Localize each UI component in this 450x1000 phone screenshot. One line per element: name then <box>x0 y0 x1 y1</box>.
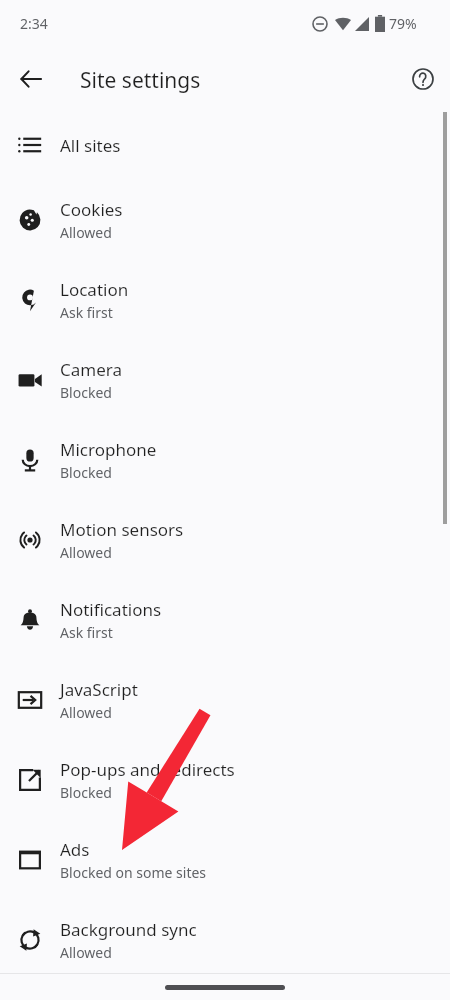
staticText: Allowed <box>60 943 112 962</box>
button[interactable]: All sites <box>0 110 450 180</box>
button[interactable]: Background sync <box>0 900 450 980</box>
staticText: Blocked <box>60 383 112 402</box>
button[interactable]: Notifications <box>0 580 450 660</box>
button[interactable]: JavaScript <box>0 660 450 740</box>
staticText: Background sync <box>60 918 197 941</box>
button[interactable]: Microphone <box>0 420 450 500</box>
staticText: Ask first <box>60 303 113 322</box>
staticText: Notifications <box>60 598 162 621</box>
button[interactable]: Pop-ups and redirects <box>0 740 450 820</box>
staticText: Ask first <box>60 623 113 642</box>
button[interactable]: Help <box>399 55 447 103</box>
staticText: Site settings <box>80 66 201 95</box>
staticText: Blocked <box>60 463 112 482</box>
staticText: Blocked <box>60 783 112 802</box>
staticText: 2:34 <box>20 14 48 33</box>
staticText: Allowed <box>60 543 112 562</box>
staticText: Camera <box>60 358 122 381</box>
staticText: 79% <box>389 14 417 33</box>
staticText: Allowed <box>60 703 112 722</box>
staticText: JavaScript <box>60 678 138 701</box>
staticText: Allowed <box>60 223 112 242</box>
button[interactable]: Ads <box>0 820 450 900</box>
button[interactable]: Location <box>0 260 450 340</box>
button[interactable]: Back <box>7 55 55 103</box>
staticText: Pop-ups and redirects <box>60 758 235 781</box>
staticText: Cookies <box>60 198 123 221</box>
button[interactable]: Motion sensors <box>0 500 450 580</box>
staticText: Blocked on some sites <box>60 863 207 882</box>
staticText: Location <box>60 278 129 301</box>
button[interactable]: Camera <box>0 340 450 420</box>
staticText: Motion sensors <box>60 518 184 541</box>
button[interactable]: Cookies <box>0 180 450 260</box>
staticText: All sites <box>60 134 121 157</box>
staticText: Microphone <box>60 438 157 461</box>
staticText: Ads <box>60 838 90 861</box>
